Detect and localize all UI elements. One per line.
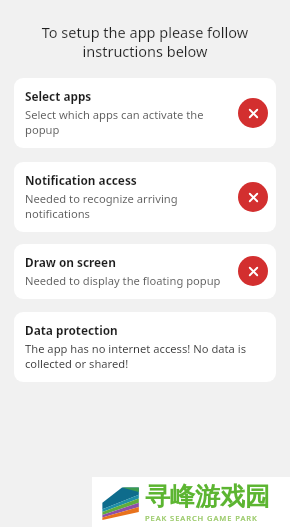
staticText: Select which apps can activate the popup xyxy=(25,107,204,137)
button[interactable]: Select apps xyxy=(14,78,276,148)
button[interactable]: Data protection xyxy=(14,312,276,382)
staticText: Needed to recognize arriving notificatio… xyxy=(25,191,178,221)
staticText: The app has no internet access! No data … xyxy=(25,341,247,371)
button[interactable]: Not granted — tap to grant permission xyxy=(238,98,268,128)
button[interactable]: Notification access xyxy=(14,162,276,232)
staticText: To setup the app please follow instructi… xyxy=(16,22,274,61)
button[interactable]: Not granted — tap to grant permission xyxy=(238,256,268,286)
staticText: Select apps xyxy=(25,88,92,104)
staticText: Data protection xyxy=(25,322,118,338)
button[interactable]: Draw on screen xyxy=(14,244,276,299)
button[interactable]: Not granted — tap to grant permission xyxy=(238,182,268,212)
staticText: Draw on screen xyxy=(25,254,116,270)
staticText: Notification access xyxy=(25,172,137,188)
staticText: 寻峰游戏园 xyxy=(145,481,270,512)
staticText: Needed to display the floating popup xyxy=(25,273,221,288)
staticText: PEAK SEARCH GAME PARK xyxy=(145,513,258,523)
